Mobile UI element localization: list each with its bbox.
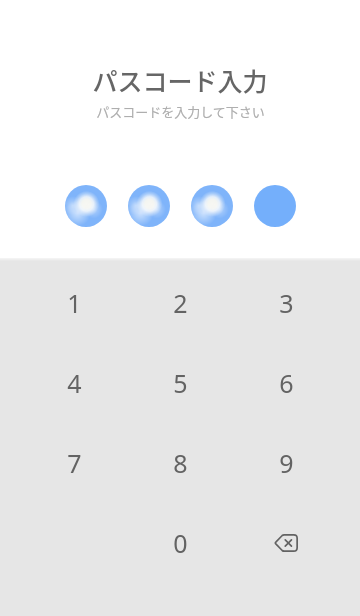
staticText: 7 [67, 446, 82, 480]
button[interactable]: 4 [21, 343, 127, 423]
button[interactable]: 8 [127, 423, 233, 503]
staticText: パスコード入力 [92, 62, 268, 98]
button[interactable]: 3 [233, 263, 339, 343]
staticText: 8 [173, 446, 188, 480]
staticText: 3 [279, 286, 294, 320]
button[interactable]: 9 [233, 423, 339, 503]
staticText: パスコードを入力して下さい [96, 102, 265, 121]
button[interactable]: 1 [21, 263, 127, 343]
staticText: 5 [173, 366, 188, 400]
button[interactable]: 7 [21, 423, 127, 503]
staticText: 1 [67, 286, 82, 320]
staticText: 9 [279, 446, 294, 480]
button[interactable]: Backspace [233, 503, 339, 583]
button[interactable]: 6 [233, 343, 339, 423]
staticText: 6 [279, 366, 294, 400]
staticText: 0 [173, 526, 188, 560]
button[interactable]: 0 [127, 503, 233, 583]
button[interactable]: 2 [127, 263, 233, 343]
staticText: 4 [67, 366, 82, 400]
button[interactable]: 5 [127, 343, 233, 423]
staticText: 2 [173, 286, 188, 320]
